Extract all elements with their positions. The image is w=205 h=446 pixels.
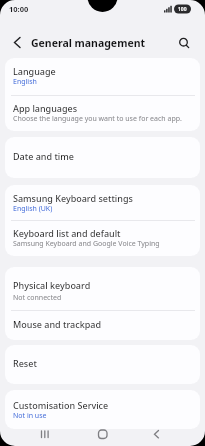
staticText: Language bbox=[13, 65, 56, 77]
button[interactable] bbox=[30, 424, 60, 446]
button[interactable] bbox=[145, 424, 175, 446]
button[interactable] bbox=[8, 34, 26, 52]
button[interactable]: Mouse and trackpad bbox=[5, 310, 200, 340]
button[interactable] bbox=[175, 34, 193, 52]
staticText: Physical keyboard bbox=[13, 279, 91, 291]
staticText: Date and time bbox=[13, 150, 74, 162]
staticText: General management bbox=[31, 36, 146, 50]
button[interactable]: App languages bbox=[5, 95, 200, 131]
staticText: Samsung Keyboard settings bbox=[13, 192, 133, 204]
button[interactable]: Physical keyboard bbox=[5, 267, 200, 310]
staticText: Customisation Service bbox=[13, 399, 109, 411]
button[interactable]: Reset bbox=[5, 345, 200, 384]
staticText: Samsung Keyboard and Google Voice Typing bbox=[13, 239, 160, 249]
staticText: English bbox=[13, 77, 37, 87]
staticText: 10:00 bbox=[9, 4, 29, 14]
button[interactable]: Language bbox=[5, 58, 200, 95]
button[interactable]: Keyboard list and default bbox=[5, 220, 200, 256]
button[interactable] bbox=[88, 424, 118, 446]
button[interactable]: Samsung Keyboard settings bbox=[5, 185, 200, 220]
button[interactable]: Date and time bbox=[5, 137, 200, 178]
staticText: 100 bbox=[178, 6, 187, 13]
staticText: Keyboard list and default bbox=[13, 227, 121, 239]
button[interactable]: Customisation Service bbox=[5, 390, 200, 424]
staticText: Choose the language you want to use for … bbox=[13, 114, 182, 124]
staticText: English (UK) bbox=[13, 204, 53, 214]
staticText: App languages bbox=[13, 102, 78, 114]
staticText: Mouse and trackpad bbox=[13, 318, 101, 330]
staticText: Not connected bbox=[13, 293, 62, 303]
staticText: Not in use bbox=[13, 411, 47, 421]
staticText: Reset bbox=[13, 357, 37, 369]
